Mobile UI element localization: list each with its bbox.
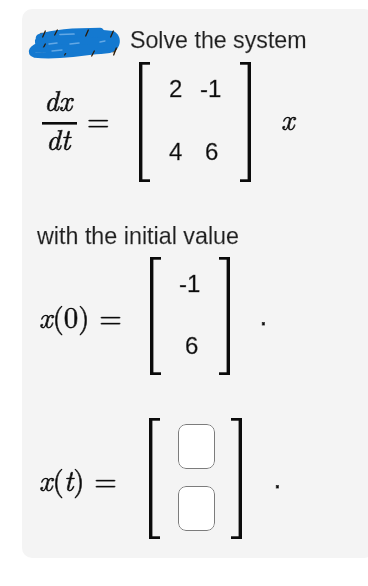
staticText: . <box>274 466 281 493</box>
staticText: -1 <box>179 270 201 297</box>
staticText: (5 points) <box>36 30 120 52</box>
staticText: x <box>281 97 295 138</box>
button[interactable]: Answer entry box 1 <box>178 424 215 469</box>
staticText: x(t) = <box>39 458 117 499</box>
staticText: Solve the system <box>130 27 307 53</box>
button[interactable]: Answer entry box 2 <box>178 486 215 531</box>
staticText: 6 <box>185 332 199 359</box>
staticText: x(0) = <box>39 295 122 336</box>
staticText: (5 points) <box>36 30 120 52</box>
staticText: dx <box>44 78 73 119</box>
staticText: = <box>87 98 110 139</box>
staticText: 6 <box>185 332 199 359</box>
staticText: dt <box>46 117 71 158</box>
staticText: dt <box>46 117 71 158</box>
staticText: . <box>260 303 267 330</box>
staticText: 6 <box>205 138 219 165</box>
staticText: x(0) = <box>39 295 122 336</box>
staticText: . <box>260 303 267 330</box>
staticText: x(t) = <box>39 458 117 499</box>
staticText: dx <box>44 78 73 119</box>
staticText: with the initial value <box>37 223 240 249</box>
staticText: 4 <box>169 138 183 165</box>
staticText: 4 <box>169 138 183 165</box>
staticText: -1 <box>179 270 201 297</box>
staticText: with the initial value <box>37 223 240 249</box>
staticText: 2 <box>169 75 183 102</box>
staticText: -1 <box>200 75 222 102</box>
staticText: -1 <box>200 75 222 102</box>
staticText: = <box>87 98 110 139</box>
staticText: Solve the system <box>130 27 307 53</box>
staticText: x <box>281 97 295 138</box>
staticText: 6 <box>205 138 219 165</box>
staticText: . <box>274 466 281 493</box>
staticText: 2 <box>169 75 183 102</box>
